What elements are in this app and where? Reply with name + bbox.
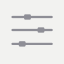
button[interactable]: Slider [11, 27, 53, 33]
button[interactable]: Slider [11, 14, 53, 20]
button[interactable]: Slider [11, 41, 53, 47]
